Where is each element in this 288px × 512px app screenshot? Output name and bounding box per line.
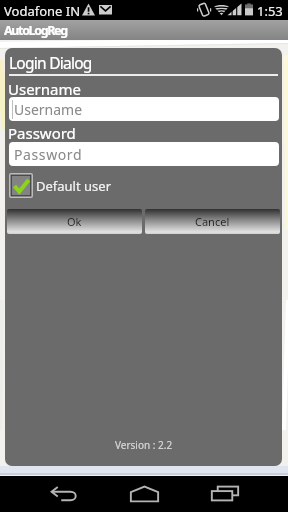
staticText: Version : 2.2: [115, 438, 173, 452]
staticText: Cancel: [195, 214, 230, 229]
staticText: Password: [8, 123, 76, 143]
button[interactable]: Home: [120, 476, 168, 511]
staticText: Password: [14, 145, 83, 164]
button[interactable]: Default user: [9, 173, 112, 198]
button[interactable]: Back: [40, 476, 88, 511]
button[interactable]: Password: [9, 142, 279, 166]
staticText: Default user: [36, 177, 112, 195]
button[interactable]: Recent apps: [201, 476, 249, 511]
staticText: Username: [14, 100, 83, 119]
staticText: 1:53: [257, 2, 283, 20]
staticText: Username: [8, 79, 81, 99]
staticText: AutoLogReg: [4, 22, 67, 39]
staticText: Vodafone IN: [4, 2, 81, 20]
staticText: Login Dialog: [9, 52, 92, 73]
button[interactable]: Ok: [7, 209, 142, 234]
button[interactable]: Cancel: [145, 209, 280, 234]
staticText: Ok: [67, 214, 82, 229]
button[interactable]: Username: [9, 97, 279, 121]
